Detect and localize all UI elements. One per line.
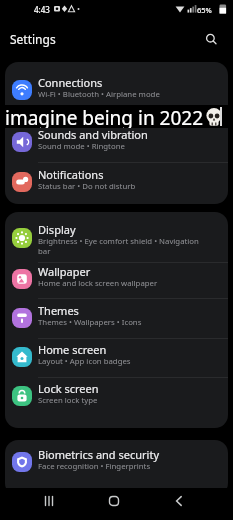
staticText: Themes (38, 303, 79, 318)
button[interactable]: Biometrics and security (5, 442, 228, 482)
staticText: Layout • App icon badges (38, 356, 131, 367)
staticText: Home and lock screen wallpaper (38, 278, 158, 289)
staticText: bar (38, 246, 51, 257)
staticText: Display (38, 222, 76, 237)
staticText: Status bar • Do not disturb (38, 181, 136, 192)
staticText: Themes • Wallpapers • Icons (38, 317, 142, 328)
button[interactable]: Display (5, 213, 228, 263)
staticText: Connections (38, 75, 103, 90)
staticText: Brightness • Eye comfort shield • Naviga… (38, 236, 199, 247)
button[interactable]: Notifications (5, 162, 228, 202)
staticText: Settings (10, 31, 56, 47)
staticText: Home screen (38, 342, 107, 357)
staticText: 65% (197, 5, 212, 15)
staticText: Biometrics and security (38, 447, 159, 462)
button[interactable] (33, 488, 65, 520)
button[interactable]: Themes (5, 298, 228, 338)
staticText: Face recognition • Fingerprints (38, 461, 151, 472)
button[interactable]: Connections (5, 70, 228, 110)
button[interactable]: Home screen (5, 337, 228, 377)
staticText: Screen lock type (38, 395, 98, 406)
staticText: imagine being in 2022 (5, 105, 204, 128)
staticText: 4:43 (34, 4, 50, 15)
button[interactable]: Wallpaper (5, 259, 228, 299)
button[interactable] (163, 488, 195, 520)
staticText: Lock screen (38, 381, 99, 396)
button[interactable] (98, 488, 130, 520)
staticText: Wallpaper (38, 264, 91, 279)
staticText: Sound mode • Ringtone (38, 141, 125, 152)
button[interactable] (202, 30, 220, 48)
staticText: Wi-Fi • Bluetooth • Airplane mode (38, 89, 160, 100)
button[interactable]: Sounds and vibration (5, 122, 228, 162)
staticText: Notifications (38, 167, 104, 182)
button[interactable]: Lock screen (5, 376, 228, 416)
staticText: Sounds and vibration (38, 127, 148, 142)
